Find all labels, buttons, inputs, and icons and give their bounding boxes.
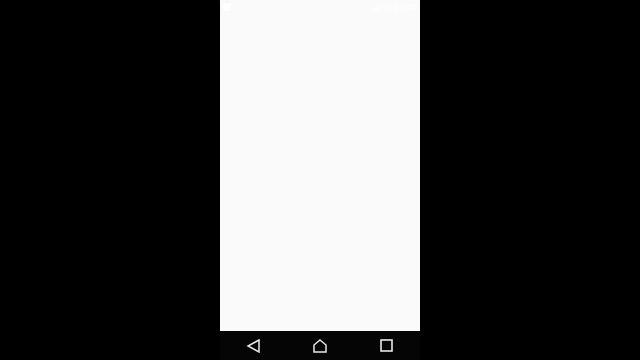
button[interactable]: Home [286,331,353,360]
button[interactable]: Back [220,331,286,360]
button[interactable]: Recent apps [353,331,420,360]
